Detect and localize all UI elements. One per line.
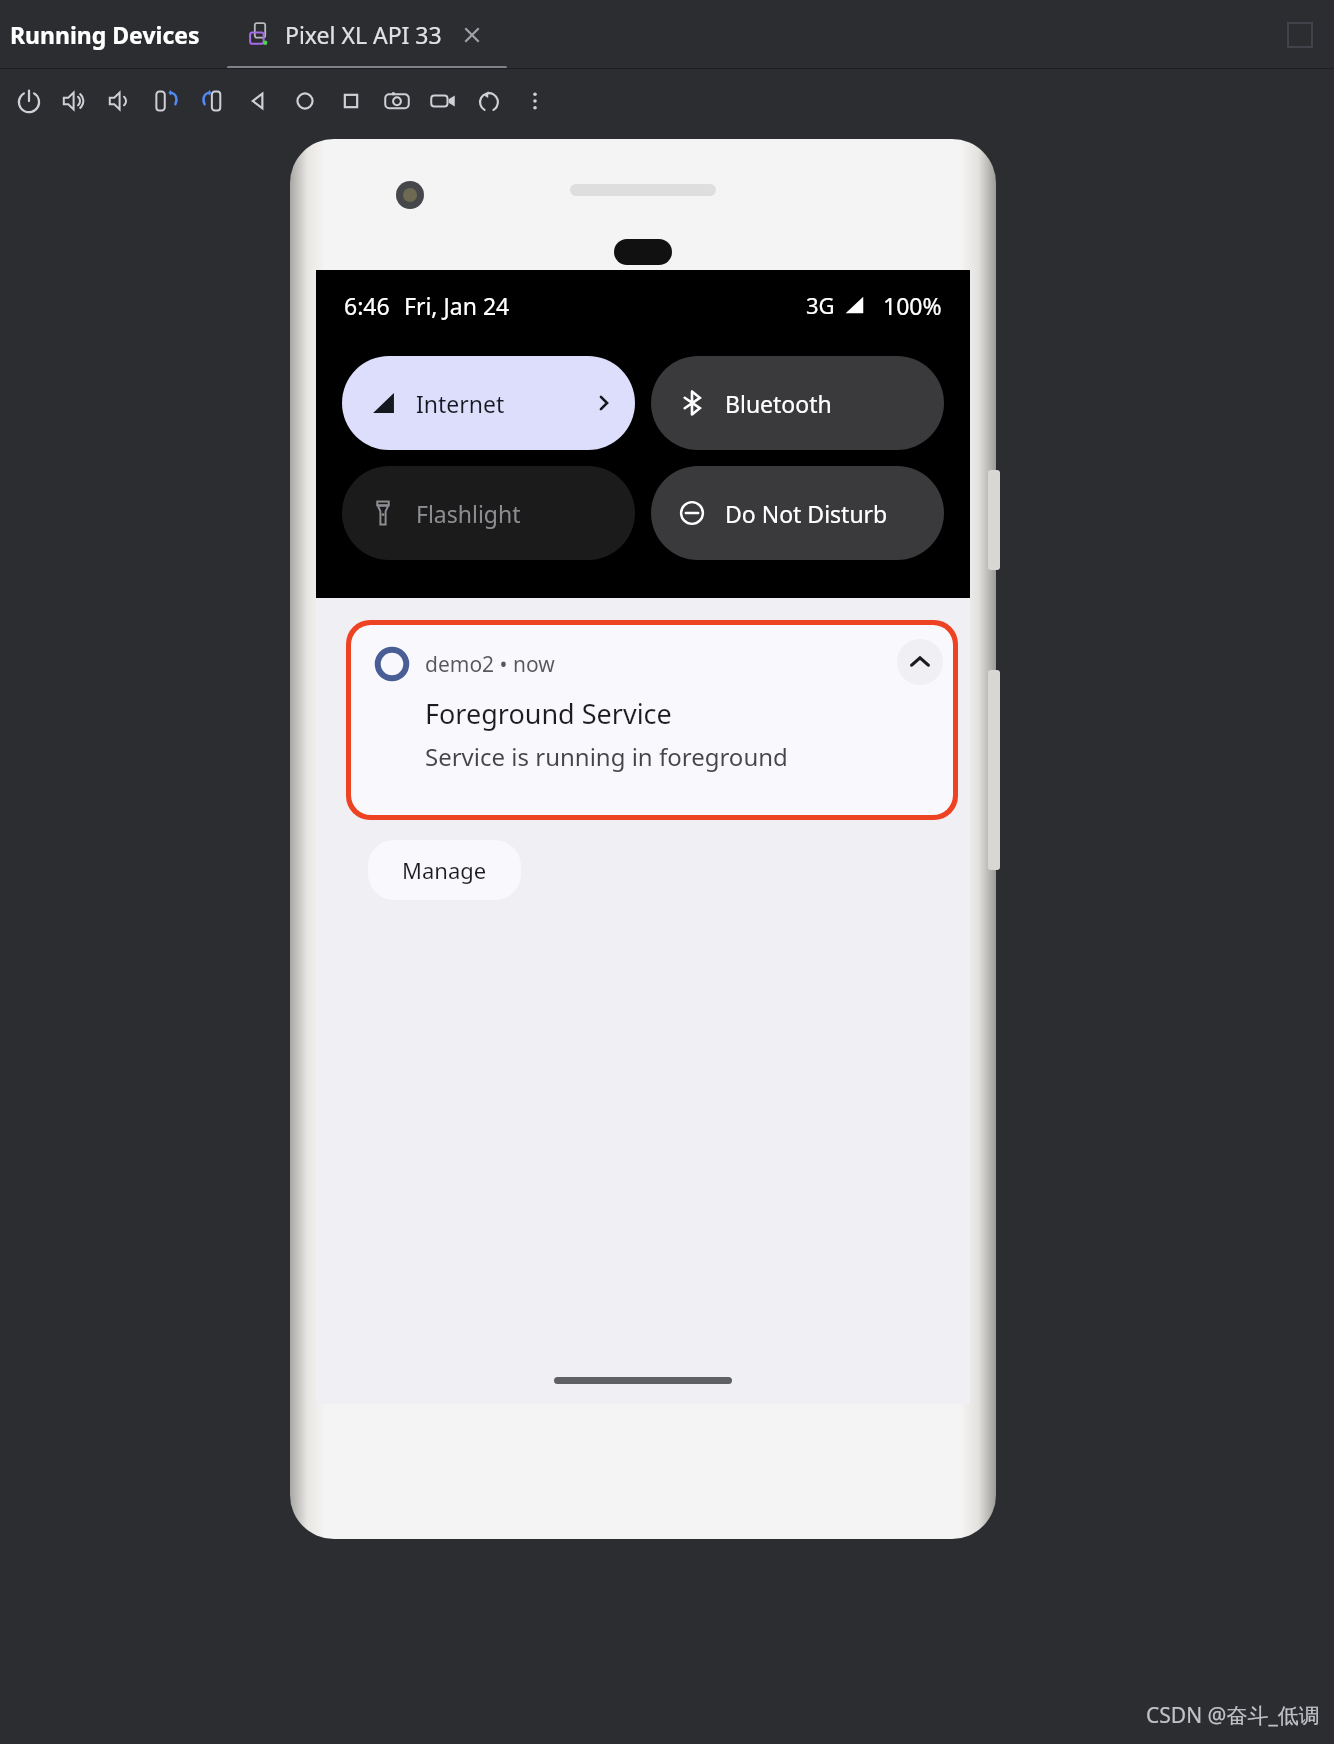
button[interactable]: Close tab [460, 23, 484, 47]
staticText: demo2 • now [425, 650, 555, 679]
staticText: CSDN @奋斗_低调 [1146, 1701, 1320, 1730]
button[interactable]: History [466, 78, 512, 124]
button[interactable]: Rotate right [190, 78, 236, 124]
staticText: Manage [402, 855, 487, 885]
staticText: Flashlight [416, 498, 521, 529]
button[interactable]: More [512, 78, 558, 124]
button[interactable]: Back [236, 78, 282, 124]
button[interactable]: Home [282, 78, 328, 124]
staticText: 100% [883, 290, 942, 321]
button[interactable]: Overview [328, 78, 374, 124]
button[interactable]: Volume down [98, 78, 144, 124]
button[interactable]: Manage [368, 840, 521, 900]
button[interactable]: Rotate left [144, 78, 190, 124]
button[interactable]: Bluetooth [651, 356, 944, 450]
staticText: 6:46 [344, 290, 390, 321]
staticText: Running Devices [10, 19, 200, 50]
button[interactable]: Volume up [52, 78, 98, 124]
button[interactable]: Collapse notification [897, 639, 943, 685]
button[interactable]: Pixel XL API 33 [243, 13, 488, 56]
staticText: Internet [416, 388, 505, 419]
staticText: Foreground Service [425, 695, 672, 732]
staticText: Do Not Disturb [725, 498, 888, 529]
button[interactable]: Screenshot [374, 78, 420, 124]
button[interactable]: Record screen [420, 78, 466, 124]
button[interactable]: Internet [342, 356, 635, 450]
staticText: 3G [806, 290, 835, 320]
button[interactable]: Power [6, 78, 52, 124]
staticText: Fri, Jan 24 [404, 290, 510, 321]
button[interactable]: Collapse panel [1286, 21, 1314, 49]
staticText: Service is running in foreground [425, 740, 788, 773]
button[interactable]: Do Not Disturb [651, 466, 944, 560]
staticText: Bluetooth [725, 388, 832, 419]
staticText: Pixel XL API 33 [285, 19, 442, 50]
button[interactable]: Flashlight [342, 466, 635, 560]
button[interactable]: demo2 • now [351, 625, 953, 815]
